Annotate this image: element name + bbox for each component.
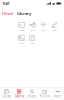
button[interactable]: Health — [27, 33, 38, 46]
staticText: Search — [28, 94, 36, 98]
button[interactable]: Photos — [16, 33, 27, 46]
staticText: Scripting — [18, 30, 24, 31]
staticText: Gallery — [15, 94, 24, 98]
staticText: Back — [4, 11, 13, 16]
button[interactable]: More — [51, 88, 64, 100]
button[interactable]: Gallery — [13, 88, 26, 100]
staticText: Folders — [40, 94, 50, 98]
button[interactable]: Folders — [38, 88, 51, 100]
button[interactable]: Sharing — [27, 20, 38, 33]
button[interactable]: Writing — [49, 20, 60, 33]
staticText: Health — [30, 43, 34, 44]
button[interactable]: Search — [26, 88, 38, 100]
staticText: Writing — [52, 30, 56, 31]
staticText: Weather — [40, 30, 46, 31]
button[interactable]: Weather — [38, 20, 49, 33]
button[interactable]: Back — [1, 10, 14, 16]
staticText: More — [54, 94, 61, 98]
staticText: Photos — [19, 43, 24, 44]
button[interactable]: Library — [0, 88, 13, 100]
button[interactable]: Scripting — [16, 20, 27, 33]
staticText: Sharing — [29, 30, 35, 31]
staticText: 9:41 — [2, 1, 9, 6]
staticText: Library — [2, 94, 10, 98]
staticText: Library — [17, 11, 31, 16]
